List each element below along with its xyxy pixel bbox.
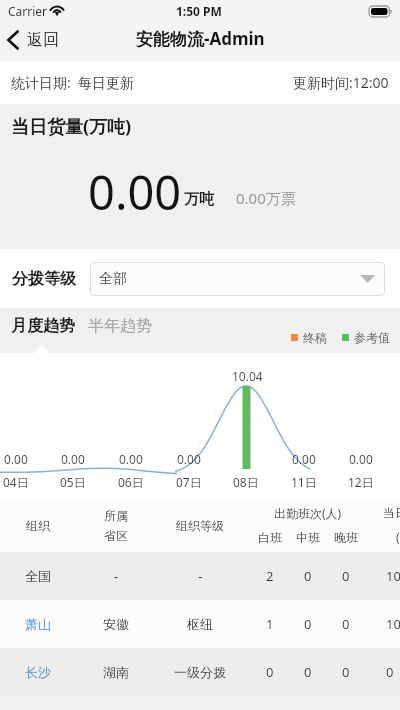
staticText: 安能物流-Admin bbox=[136, 27, 265, 50]
staticText: 0 bbox=[304, 615, 312, 633]
staticText: - bbox=[198, 567, 203, 585]
staticText: 万吨 bbox=[184, 190, 214, 209]
staticText: 返回 bbox=[27, 30, 59, 50]
button[interactable]: 萧山 bbox=[0, 600, 400, 648]
staticText: 中班 bbox=[296, 530, 320, 545]
staticText: 0.00 bbox=[4, 451, 28, 467]
staticText: 长沙 bbox=[25, 664, 51, 680]
staticText: 0.00 bbox=[119, 451, 143, 467]
staticText: 终稿 bbox=[303, 330, 327, 345]
staticText: 半年趋势 bbox=[88, 316, 152, 336]
staticText: 晚班 bbox=[334, 530, 358, 545]
staticText: 一级分拨 bbox=[174, 664, 226, 680]
staticText: 12日 bbox=[348, 474, 374, 490]
staticText: 06日 bbox=[118, 474, 144, 490]
staticText: - bbox=[114, 567, 119, 585]
staticText: 04日 bbox=[3, 474, 29, 490]
staticText: 0 bbox=[386, 663, 394, 681]
staticText: 0.00 bbox=[88, 160, 182, 224]
staticText: 统计日期: 每日更新 bbox=[11, 73, 135, 92]
staticText: 出勤班次(人) bbox=[274, 505, 342, 521]
staticText: 2 bbox=[266, 567, 274, 585]
staticText: 05日 bbox=[60, 474, 86, 490]
button[interactable]: 半年趋势 bbox=[88, 316, 152, 336]
staticText: 07日 bbox=[176, 474, 202, 490]
staticText: 枢纽 bbox=[187, 616, 213, 632]
button[interactable]: 长沙 bbox=[0, 648, 400, 696]
staticText: 0.00 bbox=[349, 451, 373, 467]
staticText: 白班 bbox=[258, 530, 282, 545]
staticText: 10 bbox=[386, 567, 400, 585]
staticText: 月度趋势 bbox=[11, 316, 75, 336]
staticText: 安徽 bbox=[103, 616, 129, 632]
staticText: 组织 bbox=[26, 518, 50, 533]
staticText: 11日 bbox=[291, 474, 317, 490]
staticText: 组织等级 bbox=[176, 518, 224, 533]
button[interactable]: 全国 bbox=[0, 552, 400, 600]
staticText: 0.00 bbox=[61, 451, 85, 467]
staticText: 0 bbox=[304, 663, 312, 681]
staticText: 10 bbox=[386, 615, 400, 633]
staticText: 0.00 bbox=[292, 451, 316, 467]
staticText: 0 bbox=[304, 567, 312, 585]
staticText: 萧山 bbox=[25, 616, 51, 632]
button[interactable]: 月度趋势 bbox=[11, 316, 75, 336]
staticText: 0.00 bbox=[177, 451, 201, 467]
button[interactable]: 全部 bbox=[90, 262, 385, 296]
staticText: 0 bbox=[342, 615, 350, 633]
staticText: 分拨等级 bbox=[12, 269, 76, 289]
staticText: 10.04 bbox=[232, 368, 263, 384]
staticText: 当日 bbox=[383, 505, 400, 520]
staticText: 参考值 bbox=[354, 330, 390, 345]
staticText: 湖南 bbox=[103, 664, 129, 680]
staticText: 所属 bbox=[104, 508, 128, 523]
staticText: 08日 bbox=[233, 474, 259, 490]
staticText: Carrier bbox=[8, 3, 48, 19]
staticText: 省区 bbox=[104, 528, 128, 543]
staticText: 0 bbox=[266, 663, 274, 681]
staticText: 当日货量(万吨) bbox=[11, 114, 132, 139]
staticText: 全国 bbox=[25, 568, 51, 584]
staticText: 0.00万票 bbox=[236, 188, 296, 208]
staticText: 1 bbox=[266, 615, 274, 633]
button[interactable]: 返回 bbox=[7, 30, 59, 50]
staticText: 0 bbox=[342, 567, 350, 585]
staticText: 更新时间:12:00 bbox=[293, 73, 389, 92]
staticText: ( bbox=[396, 529, 400, 545]
staticText: 全部 bbox=[99, 270, 127, 288]
staticText: 1:50 PM bbox=[176, 3, 222, 19]
staticText: 0 bbox=[342, 663, 350, 681]
